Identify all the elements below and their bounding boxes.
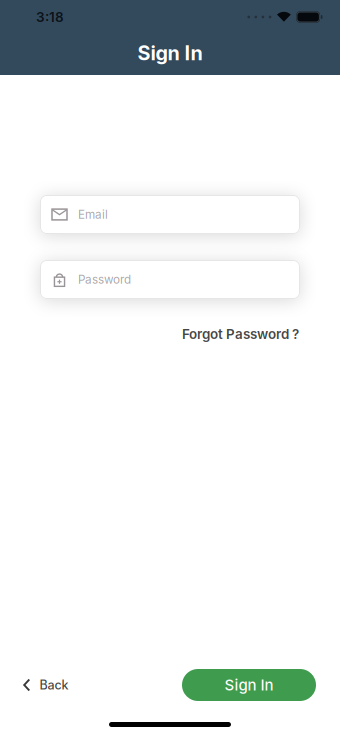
button[interactable]: Forgot Password ? xyxy=(182,326,299,342)
staticText: 3:18 xyxy=(36,9,64,25)
button[interactable]: Email xyxy=(40,195,300,234)
staticText: Sign In xyxy=(224,676,273,694)
staticText: Password xyxy=(78,272,131,287)
staticText: Forgot Password ? xyxy=(182,326,299,342)
staticText: Email xyxy=(78,207,108,222)
button[interactable]: Sign In xyxy=(182,669,316,701)
button[interactable]: Back xyxy=(23,677,68,692)
button[interactable]: Password xyxy=(40,260,300,299)
staticText: Back xyxy=(39,677,68,692)
staticText: Sign In xyxy=(137,41,202,65)
